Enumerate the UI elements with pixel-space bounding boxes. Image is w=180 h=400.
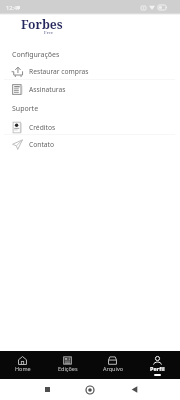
staticText: Suporte: [12, 104, 39, 114]
staticText: Configurações: [12, 50, 60, 60]
button[interactable]: Créditos: [0, 119, 180, 136]
staticText: 12:47: [6, 4, 21, 12]
button[interactable]: Back: [131, 386, 138, 393]
staticText: Home: [15, 365, 31, 372]
button[interactable]: Perfil: [135, 351, 180, 379]
button[interactable]: Arquivo: [90, 351, 135, 379]
staticText: Restaurar compras: [29, 67, 89, 76]
staticText: Edições: [58, 365, 78, 372]
staticText: Contato: [29, 140, 55, 149]
button[interactable]: Contato: [0, 136, 180, 153]
staticText: Assinaturas: [29, 85, 66, 94]
button[interactable]: Home: [0, 351, 45, 379]
staticText: Perfil: [150, 365, 165, 372]
staticText: Créditos: [29, 123, 56, 132]
button[interactable]: Edições: [45, 351, 90, 379]
button[interactable]: Assinaturas: [0, 81, 180, 98]
staticText: Forbes: [21, 16, 63, 33]
button[interactable]: Restaurar compras: [0, 63, 180, 80]
button[interactable]: Home: [86, 386, 94, 394]
staticText: Free: [44, 30, 53, 36]
staticText: Arquivo: [103, 365, 123, 372]
